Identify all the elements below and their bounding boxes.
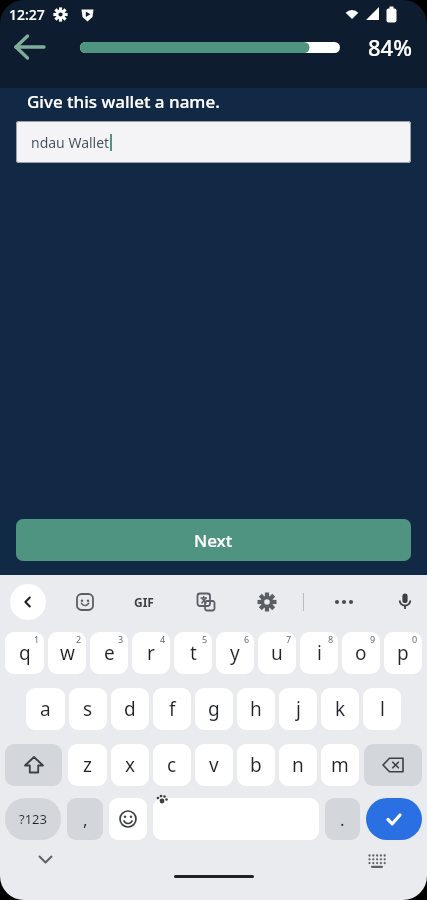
- staticText: d: [124, 696, 136, 722]
- staticText: 5: [202, 633, 208, 645]
- button[interactable]: [5, 744, 62, 786]
- button[interactable]: GIF: [124, 582, 164, 622]
- staticText: Next: [194, 529, 233, 552]
- button[interactable]: u: [258, 632, 296, 674]
- button[interactable]: [153, 798, 319, 840]
- button[interactable]: d: [111, 688, 149, 730]
- staticText: z: [83, 752, 92, 778]
- button[interactable]: [65, 582, 105, 622]
- button[interactable]: [364, 744, 422, 786]
- staticText: r: [147, 640, 155, 666]
- staticText: o: [355, 640, 367, 666]
- staticText: 12:27: [9, 5, 45, 24]
- button[interactable]: m: [321, 744, 359, 786]
- staticText: j: [296, 696, 301, 722]
- button[interactable]: [10, 584, 46, 620]
- button[interactable]: p: [384, 632, 422, 674]
- staticText: ,: [83, 808, 88, 831]
- staticText: 1: [34, 633, 40, 645]
- button[interactable]: h: [237, 688, 275, 730]
- staticText: w: [60, 640, 75, 666]
- button[interactable]: j: [279, 688, 317, 730]
- button[interactable]: x: [111, 744, 149, 786]
- staticText: 3: [118, 633, 124, 645]
- staticText: s: [83, 696, 93, 722]
- staticText: b: [250, 752, 262, 778]
- button[interactable]: [109, 798, 147, 840]
- staticText: c: [167, 752, 177, 778]
- staticText: 84%: [368, 32, 412, 62]
- staticText: a: [40, 696, 51, 722]
- staticText: 9: [370, 633, 376, 645]
- button[interactable]: [385, 582, 425, 622]
- button[interactable]: z: [68, 744, 107, 786]
- staticText: l: [380, 696, 385, 722]
- staticText: p: [397, 640, 409, 666]
- button[interactable]: w: [48, 632, 86, 674]
- button[interactable]: o: [342, 632, 380, 674]
- button[interactable]: [0, 28, 60, 66]
- staticText: 6: [244, 633, 250, 645]
- staticText: 7: [286, 633, 292, 645]
- button[interactable]: ,: [67, 798, 103, 840]
- button[interactable]: [247, 582, 287, 622]
- button[interactable]: t: [174, 632, 212, 674]
- staticText: ?123: [19, 810, 47, 828]
- staticText: g: [208, 696, 220, 722]
- button[interactable]: i: [300, 632, 338, 674]
- staticText: u: [271, 640, 283, 666]
- button[interactable]: [324, 582, 364, 622]
- staticText: GIF: [134, 594, 154, 610]
- button[interactable]: s: [69, 688, 107, 730]
- button[interactable]: a: [26, 688, 65, 730]
- staticText: m: [331, 752, 349, 778]
- button[interactable]: [30, 844, 60, 874]
- staticText: t: [190, 640, 197, 666]
- button[interactable]: [366, 798, 422, 840]
- button[interactable]: l: [363, 688, 401, 730]
- staticText: k: [335, 696, 346, 722]
- staticText: ndau Wallet: [31, 133, 110, 152]
- button[interactable]: g: [195, 688, 233, 730]
- button[interactable]: ?123: [5, 798, 61, 840]
- button[interactable]: r: [132, 632, 170, 674]
- staticText: n: [292, 752, 304, 778]
- button[interactable]: k: [321, 688, 359, 730]
- button[interactable]: [186, 582, 226, 622]
- staticText: 8: [328, 633, 334, 645]
- button[interactable]: y: [216, 632, 254, 674]
- button[interactable]: v: [195, 744, 233, 786]
- button[interactable]: e: [90, 632, 128, 674]
- button[interactable]: b: [237, 744, 275, 786]
- staticText: y: [230, 640, 240, 666]
- staticText: .: [340, 808, 345, 831]
- staticText: i: [317, 640, 322, 666]
- staticText: e: [104, 640, 115, 666]
- button[interactable]: Next: [16, 519, 411, 561]
- staticText: 4: [160, 633, 166, 645]
- button[interactable]: q: [5, 632, 44, 674]
- button[interactable]: c: [153, 744, 191, 786]
- staticText: 2: [76, 633, 82, 645]
- staticText: q: [19, 640, 31, 666]
- button[interactable]: .: [325, 798, 360, 840]
- staticText: h: [250, 696, 262, 722]
- staticText: Give this wallet a name.: [27, 90, 220, 113]
- staticText: 0: [412, 633, 418, 645]
- staticText: f: [169, 696, 176, 722]
- button[interactable]: n: [279, 744, 317, 786]
- button[interactable]: [360, 844, 394, 878]
- staticText: v: [209, 752, 219, 778]
- button[interactable]: f: [153, 688, 191, 730]
- button[interactable]: ndau Wallet: [16, 121, 411, 163]
- staticText: x: [125, 752, 136, 778]
